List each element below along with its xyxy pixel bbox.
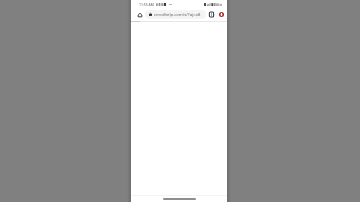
button[interactable]: Open tabs [208,11,215,18]
button[interactable]: cmcdhelp.com/s/?aj=o8 [145,10,206,19]
staticText: 11:55 AM [139,2,154,7]
button[interactable]: Opera menu [218,11,225,18]
button[interactable]: Home gesture bar [163,198,196,200]
staticText: cmcdhelp.com/s/?aj=o8 [154,12,201,18]
button[interactable]: Home [135,10,144,19]
